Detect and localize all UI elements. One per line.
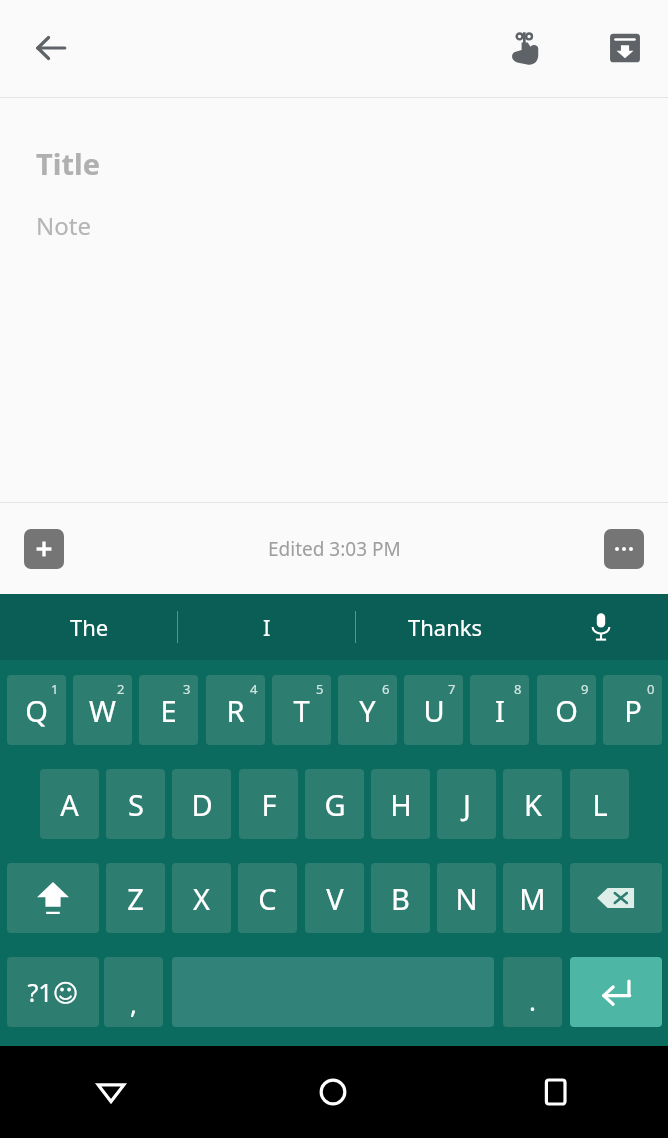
- staticText: W: [89, 691, 116, 730]
- staticText: Title: [36, 144, 100, 183]
- staticText: Thanks: [408, 612, 483, 642]
- button[interactable]: Z: [106, 863, 165, 933]
- button[interactable]: M: [503, 863, 562, 933]
- button[interactable]: U: [404, 675, 463, 745]
- staticText: L: [592, 785, 608, 824]
- staticText: 1: [51, 680, 59, 698]
- staticText: Edited 3:03 PM: [268, 536, 401, 562]
- button[interactable]: E: [139, 675, 198, 745]
- staticText: .: [529, 983, 536, 1018]
- button[interactable]: Archive: [596, 19, 654, 77]
- button[interactable]: N: [437, 863, 496, 933]
- button[interactable]: P: [603, 675, 662, 745]
- staticText: 6: [382, 680, 390, 698]
- button[interactable]: Y: [338, 675, 397, 745]
- staticText: B: [391, 879, 410, 918]
- button[interactable]: Thanks: [356, 594, 534, 660]
- button[interactable]: Reminder: [496, 19, 554, 77]
- button[interactable]: X: [172, 863, 231, 933]
- button[interactable]: I: [470, 675, 529, 745]
- button[interactable]: I: [178, 594, 356, 660]
- staticText: N: [455, 879, 478, 918]
- staticText: R: [226, 691, 245, 730]
- staticText: H: [390, 785, 412, 824]
- button[interactable]: O: [537, 675, 596, 745]
- staticText: M: [519, 879, 546, 918]
- staticText: Z: [127, 879, 144, 918]
- button[interactable]: B: [371, 863, 430, 933]
- button[interactable]: Recents: [444, 1046, 668, 1138]
- button[interactable]: L: [570, 769, 629, 839]
- staticText: D: [191, 785, 213, 824]
- staticText: Y: [359, 691, 376, 730]
- button[interactable]: K: [503, 769, 562, 839]
- staticText: I: [495, 691, 505, 730]
- staticText: J: [463, 785, 471, 824]
- button[interactable]: V: [305, 863, 364, 933]
- staticText: G: [324, 785, 346, 824]
- button[interactable]: The: [0, 594, 178, 660]
- button[interactable]: W: [73, 675, 132, 745]
- staticText: 4: [250, 680, 258, 698]
- staticText: Note: [36, 209, 91, 242]
- button[interactable]: R: [206, 675, 265, 745]
- staticText: P: [624, 691, 642, 730]
- staticText: 0: [647, 680, 655, 698]
- button[interactable]: ,: [104, 957, 163, 1027]
- button[interactable]: Back: [0, 1046, 222, 1138]
- staticText: 8: [514, 680, 522, 698]
- staticText: T: [293, 691, 310, 730]
- button[interactable]: D: [172, 769, 231, 839]
- staticText: U: [423, 691, 445, 730]
- button[interactable]: C: [238, 863, 297, 933]
- button[interactable]: Voice input: [534, 594, 668, 660]
- button[interactable]: S: [106, 769, 165, 839]
- button[interactable]: Home: [222, 1046, 444, 1138]
- button[interactable]: More options: [604, 529, 644, 569]
- staticText: 3: [183, 680, 191, 698]
- button[interactable]: Backspace: [570, 863, 662, 933]
- staticText: V: [326, 879, 344, 918]
- button[interactable]: G: [305, 769, 364, 839]
- staticText: 9: [581, 680, 589, 698]
- staticText: E: [160, 691, 177, 730]
- button[interactable]: Shift: [7, 863, 99, 933]
- button[interactable]: F: [239, 769, 298, 839]
- button[interactable]: ?1☺: [7, 957, 99, 1027]
- staticText: ,: [130, 986, 137, 1021]
- staticText: ?1☺: [27, 975, 79, 1009]
- button[interactable]: Enter: [570, 957, 662, 1027]
- staticText: The: [70, 612, 109, 642]
- staticText: 5: [316, 680, 324, 698]
- button[interactable]: Back: [22, 19, 80, 77]
- button[interactable]: A: [40, 769, 99, 839]
- button[interactable]: .: [503, 957, 562, 1027]
- staticText: O: [555, 691, 578, 730]
- staticText: A: [60, 785, 79, 824]
- button[interactable]: Q: [7, 675, 66, 745]
- staticText: X: [193, 879, 210, 918]
- staticText: Q: [25, 691, 48, 730]
- staticText: K: [524, 785, 542, 824]
- staticText: I: [263, 612, 271, 642]
- staticText: S: [128, 785, 144, 824]
- staticText: C: [258, 879, 277, 918]
- button[interactable]: T: [272, 675, 331, 745]
- staticText: 2: [117, 680, 125, 698]
- button[interactable]: H: [371, 769, 430, 839]
- staticText: F: [261, 785, 277, 824]
- staticText: 7: [448, 680, 456, 698]
- button[interactable]: Add: [24, 529, 64, 569]
- button[interactable]: J: [437, 769, 496, 839]
